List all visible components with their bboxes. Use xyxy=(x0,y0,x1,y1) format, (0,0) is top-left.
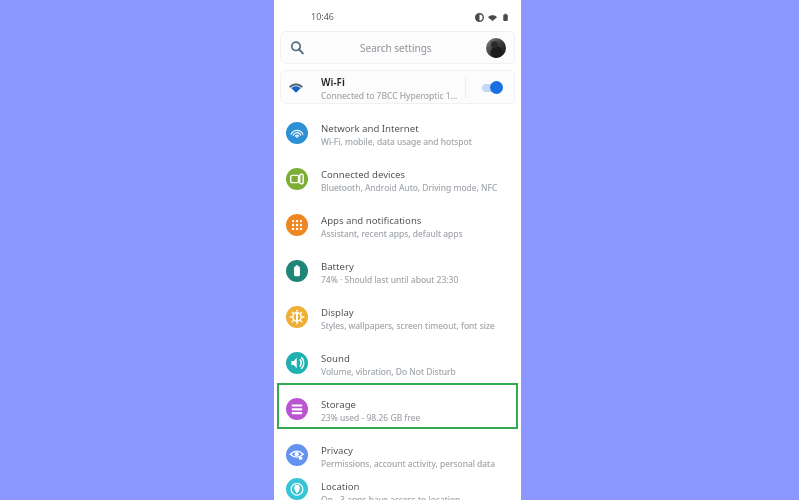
staticText: Apps and notifications xyxy=(321,214,422,227)
button[interactable]: Battery xyxy=(274,248,521,294)
staticText: Location xyxy=(321,480,360,493)
staticText: Assistant, recent apps, default apps xyxy=(321,228,463,240)
button[interactable]: Sound xyxy=(274,340,521,386)
button[interactable]: Wi-Fi toggle xyxy=(482,81,503,94)
staticText: 74% · Should last until about 23:30 xyxy=(321,274,459,286)
button[interactable]: Privacy xyxy=(274,432,521,478)
button[interactable]: Apps and notifications xyxy=(274,202,521,248)
staticText: Bluetooth, Android Auto, Driving mode, N… xyxy=(321,182,498,194)
staticText: Wi-Fi, mobile, data usage and hotspot xyxy=(321,136,472,148)
staticText: Connected to 7BCC Hyperoptic 1… xyxy=(321,90,458,102)
button[interactable]: Display xyxy=(274,294,521,340)
staticText: 23% used - 98.26 GB free xyxy=(321,412,421,424)
staticText: Styles, wallpapers, screen timeout, font… xyxy=(321,320,495,332)
staticText: Search settings xyxy=(360,41,432,55)
staticText: Sound xyxy=(321,352,350,365)
staticText: Network and Internet xyxy=(321,122,419,135)
staticText: Connected devices xyxy=(321,168,406,181)
staticText: Wi-Fi xyxy=(321,76,345,89)
staticText: Permissions, account activity, personal … xyxy=(321,458,495,470)
staticText: Display xyxy=(321,306,354,319)
staticText: Privacy xyxy=(321,444,353,457)
staticText: Storage xyxy=(321,398,356,411)
staticText: On - 3 apps have access to location xyxy=(321,494,461,500)
button[interactable]: Location xyxy=(274,478,521,500)
button[interactable]: Wi-Fi xyxy=(280,70,515,104)
button[interactable]: Search settings xyxy=(280,31,515,64)
staticText: Battery xyxy=(321,260,354,273)
button[interactable]: Connected devices xyxy=(274,156,521,202)
staticText: Volume, vibration, Do Not Disturb xyxy=(321,366,456,378)
button[interactable]: Network and Internet xyxy=(274,110,521,156)
staticText: 10:46 xyxy=(311,10,335,22)
button[interactable]: Account xyxy=(486,38,506,58)
button[interactable]: Storage xyxy=(274,386,521,432)
